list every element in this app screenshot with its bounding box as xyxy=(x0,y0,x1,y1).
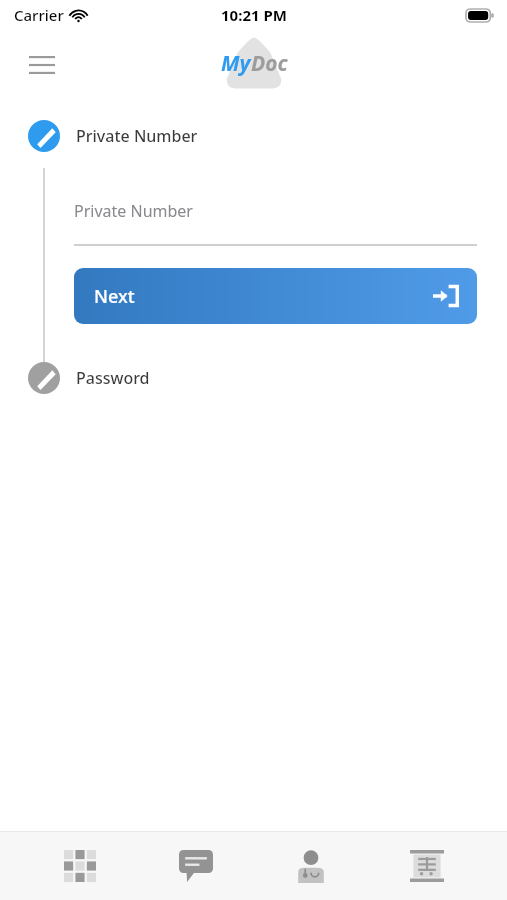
button[interactable]: Next xyxy=(74,268,477,324)
button[interactable]: Password xyxy=(28,362,487,394)
button[interactable]: Menu xyxy=(20,43,64,87)
staticText: Private Number xyxy=(74,200,193,222)
staticText: 10:21 PM xyxy=(221,5,287,25)
staticText: My xyxy=(221,49,251,78)
button[interactable]: Doctors xyxy=(276,836,346,896)
staticText: Doc xyxy=(251,49,288,78)
button[interactable]: Messages xyxy=(161,836,231,896)
staticText: Carrier xyxy=(14,5,64,25)
staticText: Private Number xyxy=(76,125,198,147)
button[interactable]: Dashboard xyxy=(45,836,115,896)
button[interactable]: Records xyxy=(392,836,462,896)
button[interactable]: Private Number xyxy=(28,120,487,152)
staticText: Next xyxy=(94,284,135,309)
staticText: Password xyxy=(76,367,150,389)
